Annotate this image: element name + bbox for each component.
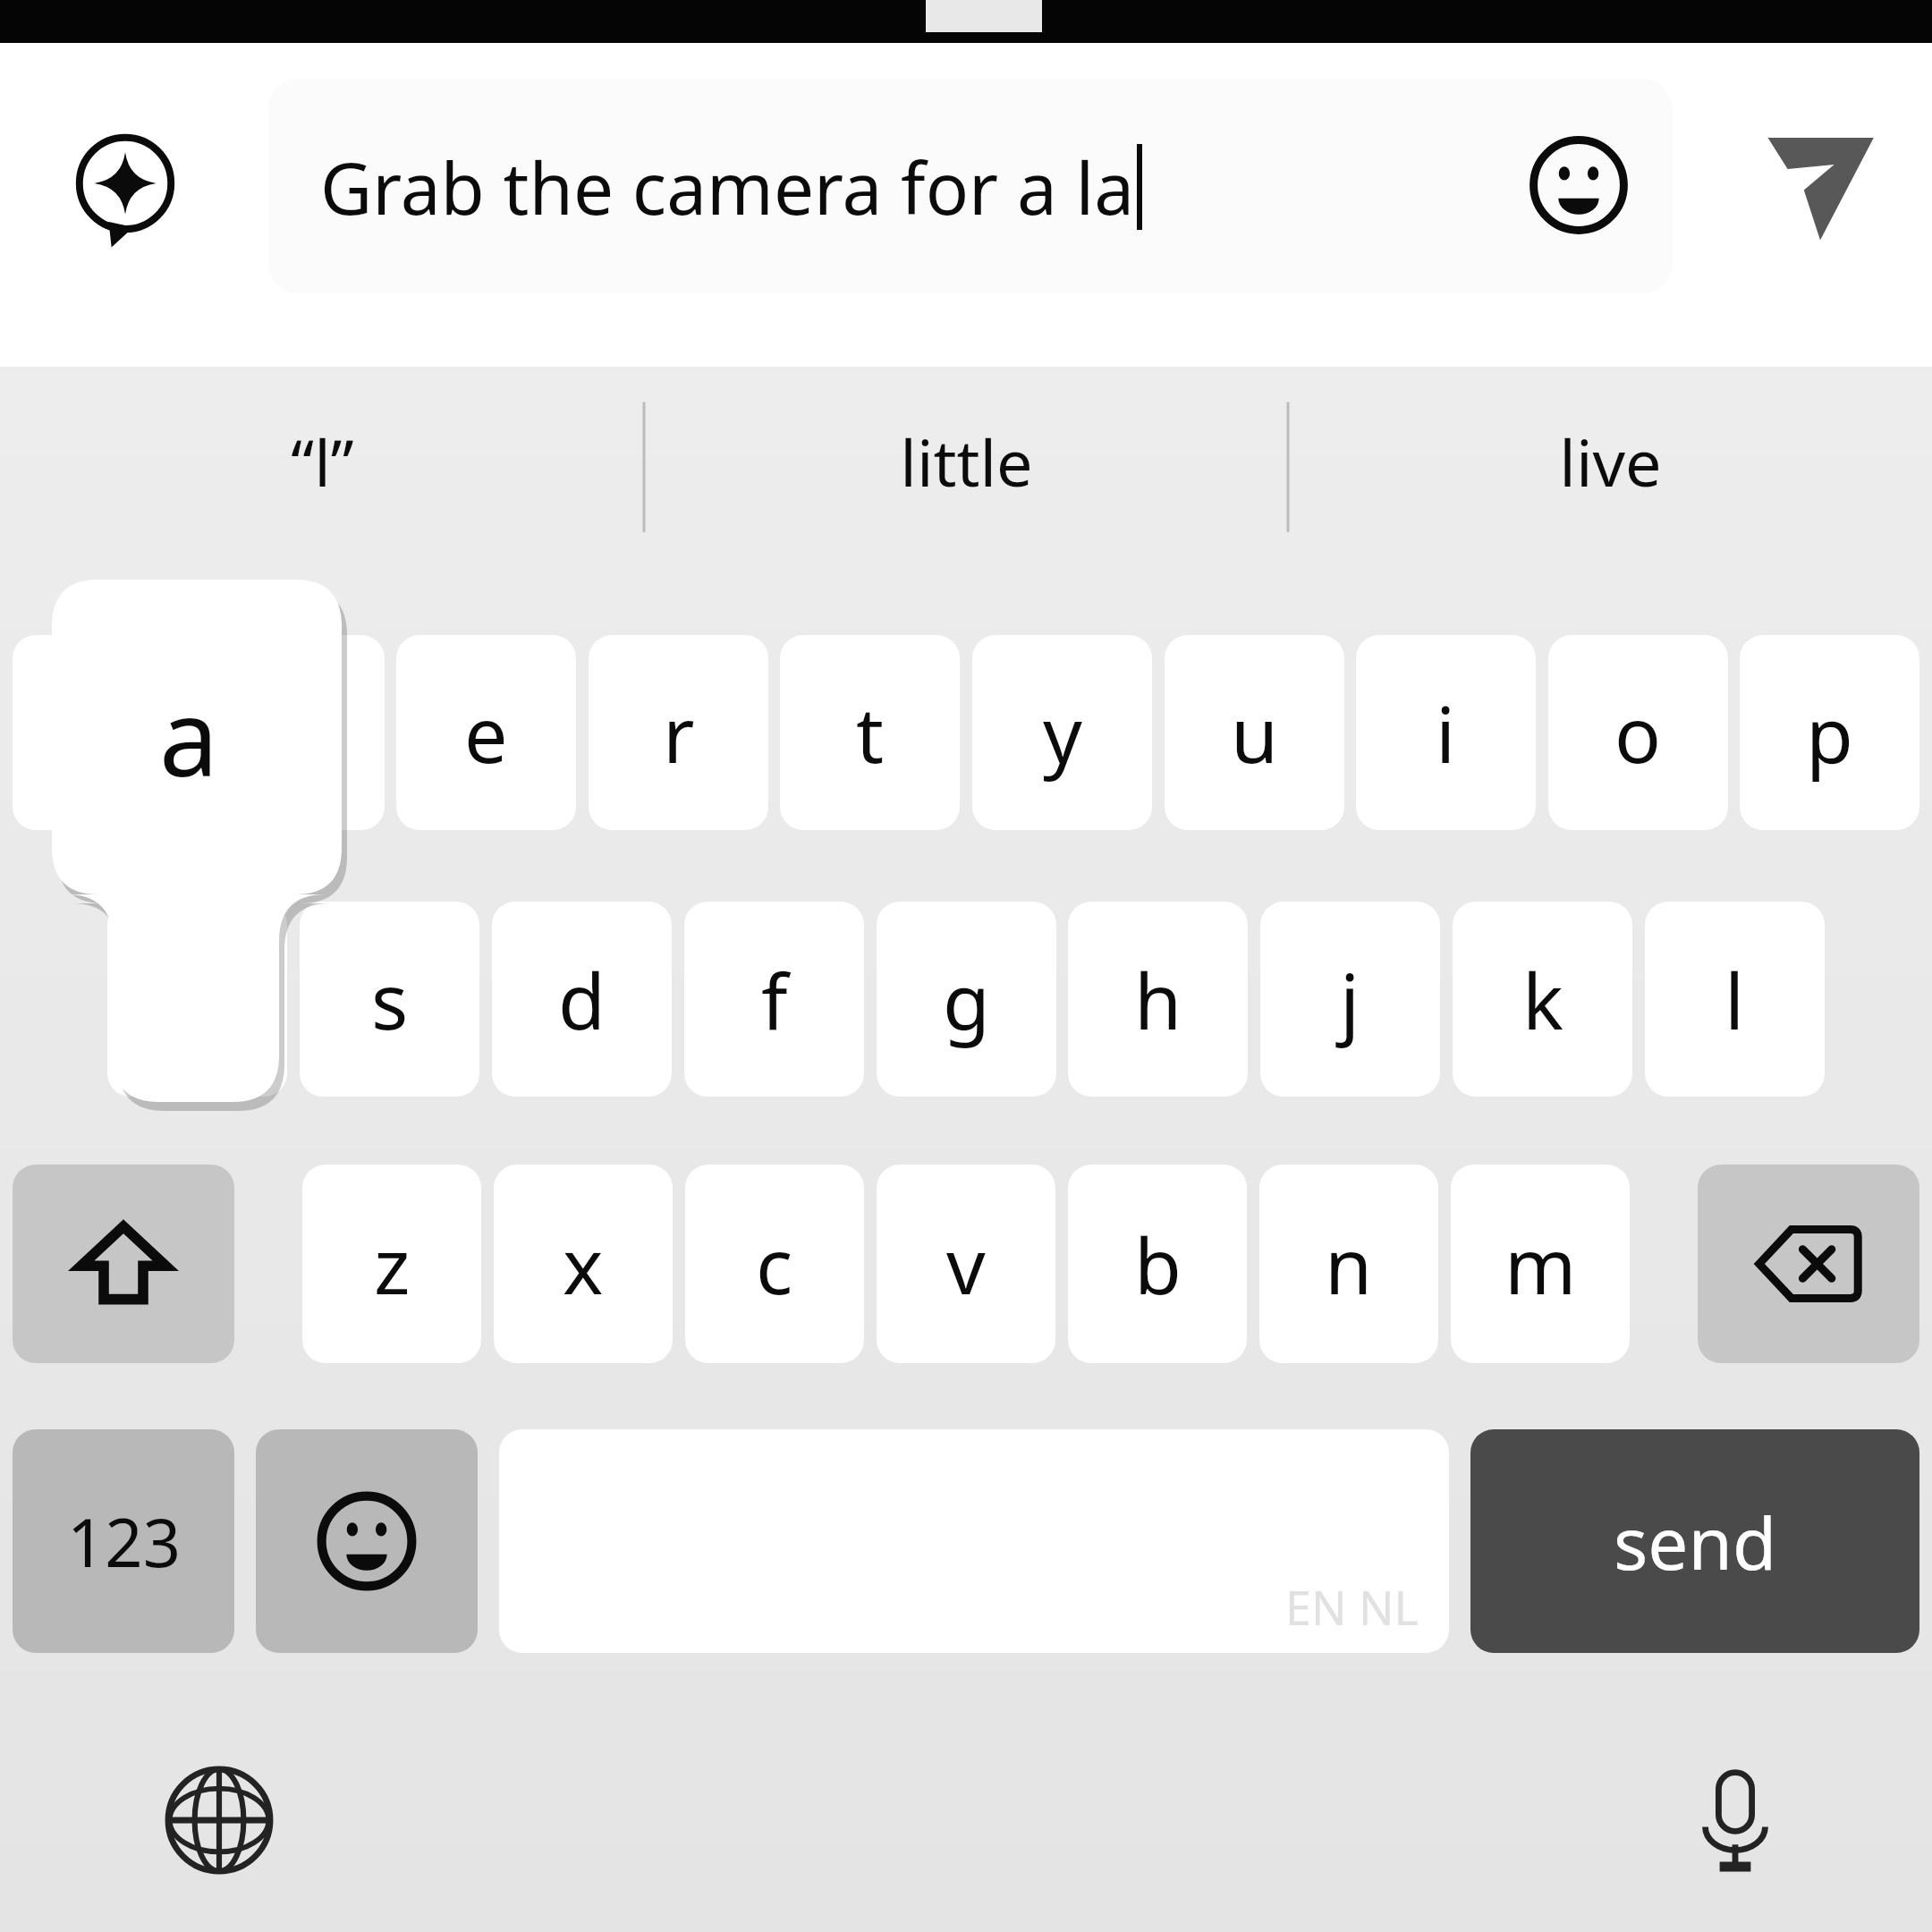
staticText: v	[946, 1212, 986, 1317]
button[interactable]: e	[396, 635, 576, 830]
button[interactable]: Grab the camera for a la	[268, 79, 1673, 293]
button[interactable]: Backspace	[1698, 1165, 1919, 1363]
button[interactable]: Send	[1749, 113, 1892, 256]
button[interactable]: c	[685, 1165, 864, 1363]
button[interactable]: n	[1259, 1165, 1438, 1363]
staticText: u	[1231, 681, 1279, 785]
staticText: live	[1559, 418, 1662, 505]
button[interactable]: g	[877, 902, 1056, 1097]
button[interactable]: l	[1645, 902, 1825, 1097]
button[interactable]: r	[589, 635, 768, 830]
staticText: a	[159, 664, 219, 808]
staticText: m	[1504, 1212, 1577, 1317]
button[interactable]: q	[13, 635, 192, 830]
button[interactable]: p	[1740, 635, 1919, 830]
button[interactable]: Emoji	[1512, 118, 1646, 252]
button[interactable]: d	[492, 902, 672, 1097]
staticText: j	[1340, 947, 1360, 1052]
staticText: f	[761, 947, 788, 1052]
staticText: o	[1614, 681, 1662, 785]
staticText: i	[1436, 681, 1456, 785]
staticText: “l”	[291, 418, 354, 505]
button[interactable]: send	[1470, 1429, 1919, 1653]
button[interactable]: h	[1068, 902, 1248, 1097]
button[interactable]: x	[494, 1165, 673, 1363]
button[interactable]: Switch language	[134, 1735, 304, 1905]
staticText: p	[1806, 681, 1853, 785]
button[interactable]: u	[1165, 635, 1344, 830]
button[interactable]: k	[1453, 902, 1632, 1097]
button[interactable]: EN NL	[499, 1429, 1449, 1653]
button[interactable]: 123	[13, 1429, 234, 1653]
button[interactable]: z	[302, 1165, 481, 1363]
button[interactable]: “l”	[0, 369, 644, 555]
button[interactable]: little	[644, 369, 1288, 555]
staticText: n	[1325, 1212, 1373, 1317]
button[interactable]: y	[972, 635, 1152, 830]
staticText: c	[756, 1212, 793, 1317]
button[interactable]: b	[1068, 1165, 1247, 1363]
staticText: Grab the camera for a la	[320, 138, 1135, 235]
button[interactable]: m	[1451, 1165, 1630, 1363]
button[interactable]: a	[107, 902, 287, 1097]
staticText: x	[563, 1212, 604, 1317]
button[interactable]: o	[1548, 635, 1728, 830]
button[interactable]: Voice input	[1650, 1735, 1820, 1905]
staticText: k	[1522, 947, 1563, 1052]
staticText: g	[943, 947, 990, 1052]
staticText: e	[464, 681, 508, 785]
staticText: y	[1043, 681, 1082, 785]
staticText: s	[371, 947, 409, 1052]
staticText: r	[663, 681, 695, 785]
button[interactable]: f	[684, 902, 864, 1097]
button[interactable]: w	[205, 635, 385, 830]
staticText: EN NL	[1285, 1575, 1419, 1639]
button[interactable]: live	[1288, 369, 1932, 555]
button[interactable]: Shift	[13, 1165, 234, 1363]
staticText: t	[856, 681, 885, 785]
staticText: send	[1614, 1493, 1777, 1590]
staticText: l	[1724, 947, 1745, 1052]
button[interactable]: Emoji keyboard	[256, 1429, 478, 1653]
staticText: b	[1134, 1212, 1182, 1317]
button[interactable]: i	[1356, 635, 1536, 830]
button[interactable]: j	[1260, 902, 1440, 1097]
staticText: d	[558, 947, 606, 1052]
button[interactable]: Smart compose	[54, 116, 197, 259]
staticText: little	[900, 418, 1033, 505]
button[interactable]: v	[877, 1165, 1055, 1363]
button[interactable]: s	[300, 902, 479, 1097]
staticText: z	[374, 1212, 411, 1317]
button[interactable]: t	[780, 635, 960, 830]
staticText: 123	[67, 1496, 181, 1587]
staticText: h	[1134, 947, 1182, 1052]
